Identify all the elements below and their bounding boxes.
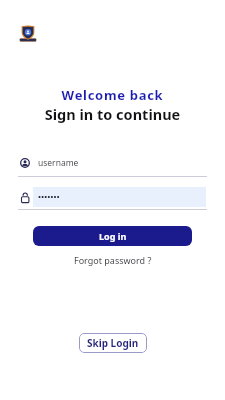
button[interactable]: Log in — [33, 226, 192, 246]
staticText: Skip Login — [87, 336, 139, 350]
button[interactable]: Forgot password ? — [74, 254, 152, 266]
button[interactable]: username — [18, 155, 207, 171]
button[interactable]: Skip Login — [79, 333, 147, 353]
staticText: username — [38, 157, 79, 169]
staticText: Welcome back — [0, 86, 225, 104]
staticText: Sign in to continue — [0, 104, 225, 124]
staticText: Log in — [99, 230, 127, 242]
button[interactable] — [18, 187, 206, 207]
